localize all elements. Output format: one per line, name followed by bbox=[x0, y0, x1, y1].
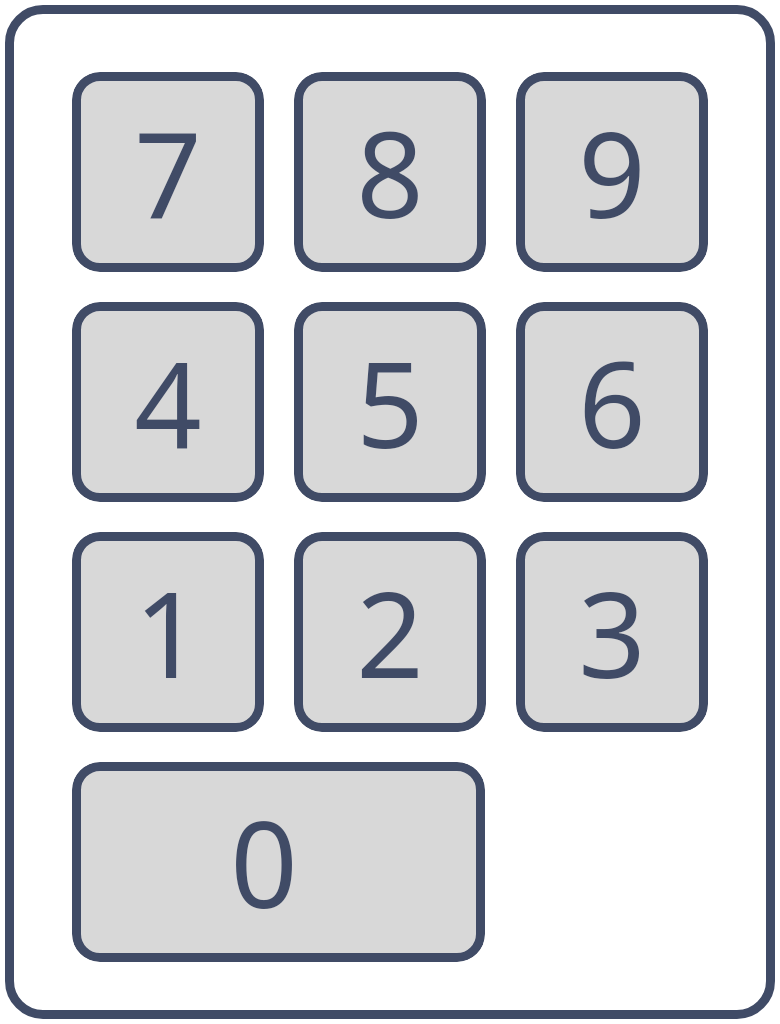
staticText: 3 bbox=[578, 552, 646, 713]
button[interactable]: 2 bbox=[294, 532, 486, 732]
staticText: 6 bbox=[578, 322, 646, 483]
button[interactable]: 7 bbox=[72, 72, 264, 272]
staticText: 1 bbox=[134, 552, 202, 713]
staticText: 5 bbox=[356, 322, 424, 483]
button[interactable]: 3 bbox=[516, 532, 708, 732]
staticText: 7 bbox=[134, 92, 202, 253]
staticText: 2 bbox=[356, 552, 424, 713]
button[interactable]: 8 bbox=[294, 72, 486, 272]
staticText: 9 bbox=[578, 92, 646, 253]
button[interactable]: 6 bbox=[516, 302, 708, 502]
button[interactable]: 5 bbox=[294, 302, 486, 502]
button[interactable]: 1 bbox=[72, 532, 264, 732]
button[interactable]: 0 bbox=[72, 762, 485, 962]
button[interactable]: 9 bbox=[516, 72, 708, 272]
staticText: 0 bbox=[230, 782, 298, 943]
button[interactable]: 4 bbox=[72, 302, 264, 502]
staticText: 8 bbox=[356, 92, 424, 253]
staticText: 4 bbox=[134, 322, 202, 483]
